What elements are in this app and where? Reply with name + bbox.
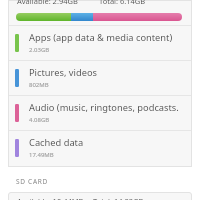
- button[interactable]: Cached data: [8, 130, 192, 165]
- staticText: 2.03GB: [29, 46, 50, 54]
- staticText: Available: 2.94GB: [17, 0, 78, 6]
- button[interactable]: Available: 10.44MB: [8, 192, 192, 200]
- staticText: Pictures, videos: [29, 66, 98, 79]
- button[interactable]: Pictures, videos: [8, 60, 192, 95]
- staticText: Apps (app data & media content): [29, 31, 173, 44]
- staticText: 802MB: [29, 81, 49, 89]
- staticText: 4.08GB: [29, 116, 50, 124]
- staticText: Cached data: [29, 136, 84, 149]
- staticText: SD CARD: [16, 177, 48, 186]
- button[interactable]: Apps (app data & media content): [8, 25, 192, 60]
- staticText: Total: 14.83GB: [93, 196, 144, 200]
- staticText: Available: 10.44MB: [17, 196, 84, 200]
- staticText: 17.49MB: [29, 151, 54, 159]
- staticText: Total: 6.14GB: [99, 0, 146, 6]
- staticText: Audio (music, ringtones, podcasts.: [29, 101, 179, 114]
- button[interactable]: Audio (music, ringtones, podcasts.: [8, 95, 192, 130]
